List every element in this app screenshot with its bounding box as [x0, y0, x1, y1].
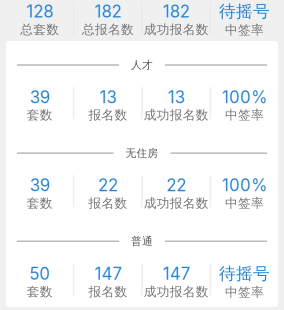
staticText: 成功报名数 [144, 22, 209, 38]
staticText: 39 [30, 87, 50, 107]
staticText: 套数 [27, 284, 53, 300]
staticText: 套数 [27, 107, 53, 123]
staticText: 13 [168, 87, 185, 107]
staticText: 39 [30, 175, 50, 195]
staticText: 成功报名数 [144, 107, 209, 123]
staticText: 22 [98, 175, 118, 195]
staticText: 无住房 [125, 146, 158, 160]
staticText: 待摇号 [219, 1, 270, 22]
staticText: 中签率 [225, 195, 264, 211]
staticText: 13 [99, 87, 116, 107]
staticText: 普通 [131, 234, 153, 248]
staticText: 成功报名数 [144, 284, 209, 300]
button[interactable]: 普通 [6, 234, 278, 300]
staticText: 128 [26, 1, 53, 22]
staticText: 套数 [27, 195, 53, 211]
staticText: 报名数 [88, 195, 127, 211]
staticText: 50 [29, 264, 50, 284]
staticText: 147 [163, 264, 190, 284]
staticText: 147 [94, 264, 121, 284]
staticText: 成功报名数 [144, 195, 209, 211]
staticText: 总套数 [20, 22, 59, 38]
staticText: 100% [222, 87, 267, 107]
button[interactable]: 无住房 [6, 146, 278, 211]
staticText: 182 [94, 1, 121, 22]
staticText: 总报名数 [82, 22, 134, 38]
staticText: 182 [163, 1, 190, 22]
staticText: 人才 [131, 58, 153, 72]
staticText: 中签率 [225, 107, 264, 123]
staticText: 报名数 [88, 284, 127, 300]
staticText: 100% [222, 175, 267, 195]
staticText: 中签率 [225, 284, 264, 300]
staticText: 待摇号 [219, 263, 270, 284]
staticText: 22 [166, 175, 186, 195]
staticText: 报名数 [88, 107, 127, 123]
button[interactable]: 128 [0, 0, 284, 39]
button[interactable]: 人才 [6, 58, 278, 123]
staticText: 中签率 [225, 22, 264, 38]
